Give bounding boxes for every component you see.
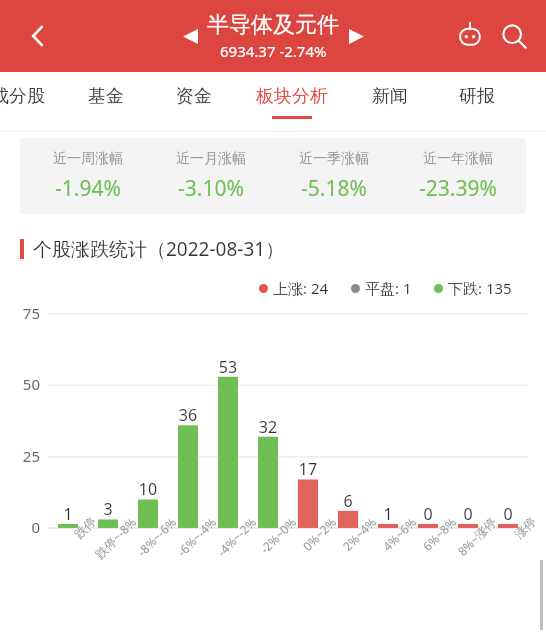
- staticText: 3: [88, 498, 128, 520]
- staticText: -1.94%: [55, 174, 121, 203]
- staticText: 6934.37 -2.74%: [220, 41, 327, 61]
- button[interactable]: Assistant: [448, 14, 492, 58]
- button[interactable]: 新闻: [346, 72, 433, 132]
- staticText: 50: [6, 374, 40, 394]
- staticText: 跌停: [37, 514, 99, 575]
- button[interactable]: 基金: [62, 72, 150, 132]
- staticText: 跌停~-8%: [77, 514, 139, 576]
- staticText: 基金: [88, 85, 124, 108]
- staticText: 17: [288, 458, 328, 480]
- button[interactable]: Back: [16, 14, 60, 58]
- staticText: 1: [48, 503, 88, 525]
- button[interactable]: Next sector: [339, 19, 373, 53]
- staticText: -6%~-4%: [157, 514, 219, 576]
- staticText: 25: [6, 446, 40, 466]
- staticText: -4%~-2%: [197, 514, 259, 576]
- staticText: 下跌: 135: [448, 278, 512, 298]
- staticText: 0: [408, 503, 448, 525]
- staticText: 8%~涨停: [437, 514, 499, 576]
- staticText: 0%~2%: [277, 514, 339, 576]
- staticText: 4%~6%: [357, 514, 419, 576]
- button[interactable]: Previous sector: [173, 19, 207, 53]
- staticText: 资金: [176, 85, 212, 108]
- staticText: 2%~4%: [317, 514, 379, 576]
- staticText: 0: [488, 503, 528, 525]
- staticText: 涨停: [477, 514, 539, 575]
- staticText: 0: [6, 517, 40, 537]
- staticText: 近一周涨幅: [53, 150, 123, 168]
- staticText: 上涨: 24: [273, 278, 329, 298]
- staticText: 6: [328, 490, 368, 512]
- staticText: 近一年涨幅: [423, 150, 493, 168]
- staticText: 成分股: [0, 85, 45, 108]
- button[interactable]: 研报: [433, 72, 520, 132]
- staticText: 近一月涨幅: [176, 150, 246, 168]
- staticText: 32: [248, 416, 288, 438]
- button[interactable]: 成分股: [0, 72, 62, 132]
- staticText: 半导体及元件: [207, 11, 339, 39]
- staticText: 近一季涨幅: [299, 150, 369, 168]
- staticText: 75: [6, 303, 40, 323]
- button[interactable]: 板块分析: [237, 72, 346, 132]
- staticText: 1: [368, 503, 408, 525]
- staticText: 新闻: [372, 85, 408, 108]
- staticText: 个股涨跌统计（2022-08-31）: [33, 236, 285, 262]
- staticText: 6%~8%: [397, 514, 459, 576]
- staticText: 10: [128, 478, 168, 500]
- staticText: 平盘: 1: [365, 278, 412, 298]
- staticText: 36: [168, 404, 208, 426]
- staticText: 53: [208, 356, 248, 378]
- button[interactable]: 资金: [150, 72, 237, 132]
- staticText: -8%~-6%: [117, 514, 179, 576]
- staticText: -23.39%: [419, 174, 497, 203]
- staticText: 板块分析: [256, 85, 328, 108]
- staticText: -2%~0%: [237, 514, 299, 576]
- staticText: -5.18%: [301, 174, 367, 203]
- staticText: 研报: [459, 85, 495, 108]
- button[interactable]: Search: [492, 14, 536, 58]
- staticText: -3.10%: [178, 174, 244, 203]
- staticText: 0: [448, 503, 488, 525]
